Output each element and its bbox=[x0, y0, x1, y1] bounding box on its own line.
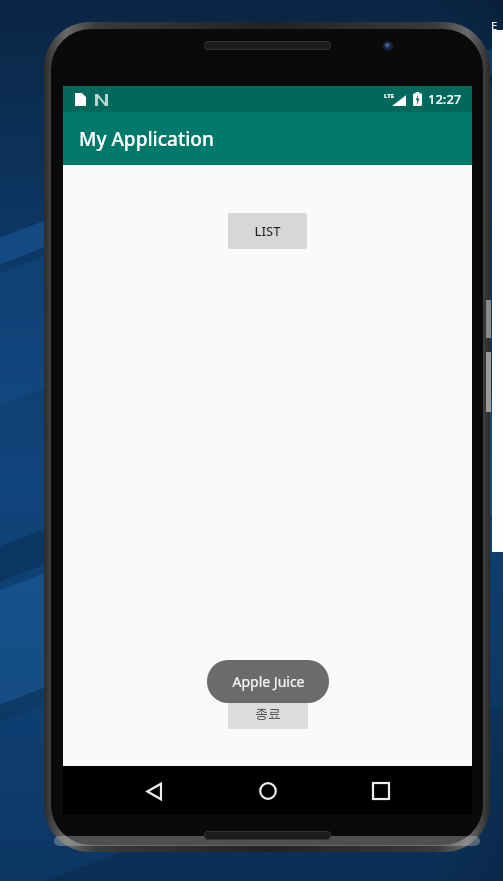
staticText: My Application bbox=[79, 126, 214, 152]
staticText: 12:27 bbox=[428, 90, 462, 108]
staticText: E bbox=[491, 18, 498, 33]
staticText: Apple Juice bbox=[232, 672, 305, 691]
button[interactable]: Back bbox=[132, 769, 176, 813]
staticText: 종료 bbox=[255, 705, 281, 721]
button[interactable]: Home bbox=[246, 769, 290, 813]
staticText: LIST bbox=[254, 222, 281, 240]
button[interactable]: LIST bbox=[228, 213, 307, 249]
button[interactable]: 종료 bbox=[228, 697, 308, 729]
staticText: K bbox=[491, 40, 498, 55]
button[interactable]: Recent apps bbox=[359, 769, 403, 813]
staticText: LTE bbox=[384, 92, 395, 100]
